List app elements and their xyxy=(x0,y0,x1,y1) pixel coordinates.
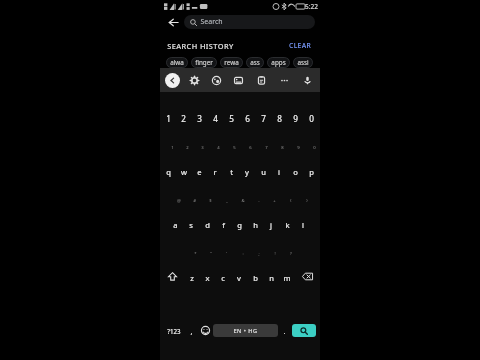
staticText: 1 xyxy=(171,145,174,151)
button[interactable]: 1 xyxy=(161,92,176,144)
button[interactable]: CLEAR xyxy=(287,40,313,51)
staticText: EN • HG xyxy=(233,327,258,335)
staticText: g xyxy=(237,220,242,230)
button[interactable]: Stickers xyxy=(230,72,246,88)
button[interactable]: 5 xyxy=(223,144,239,197)
staticText: assi xyxy=(297,58,309,67)
button[interactable]: 5 xyxy=(223,92,239,144)
button[interactable]: Back xyxy=(165,14,181,30)
button[interactable]: ass xyxy=(246,57,264,68)
staticText: ( xyxy=(290,198,292,204)
button[interactable]: 0 xyxy=(303,144,319,197)
staticText: j xyxy=(270,220,272,230)
button[interactable]: Shift xyxy=(161,250,184,303)
button[interactable]: 0 xyxy=(303,92,319,144)
button[interactable]: ( xyxy=(279,197,295,250)
button[interactable]: & xyxy=(231,197,247,250)
button[interactable]: + xyxy=(263,197,279,250)
button[interactable]: 3 xyxy=(191,144,207,197)
button[interactable]: finger xyxy=(191,57,217,68)
staticText: w xyxy=(181,167,187,177)
button[interactable]: Settings xyxy=(186,72,202,88)
staticText: b xyxy=(253,273,258,283)
button[interactable]: 6 xyxy=(239,144,255,197)
staticText: CLEAR xyxy=(289,41,311,50)
staticText: 3 xyxy=(201,145,204,151)
staticText: 8 xyxy=(281,145,284,151)
button[interactable]: ) xyxy=(295,197,311,250)
staticText: SEARCH HISTORY xyxy=(167,41,234,51)
staticText: x xyxy=(205,273,210,283)
button[interactable]: apps xyxy=(267,57,290,68)
button[interactable]: 2 xyxy=(176,92,191,144)
staticText: h xyxy=(253,220,258,230)
staticText: 2 xyxy=(186,145,189,151)
staticText: e xyxy=(197,167,202,177)
staticText: ) xyxy=(306,198,308,204)
button[interactable]: $ xyxy=(199,197,215,250)
button[interactable]: ' xyxy=(215,250,231,303)
staticText: - xyxy=(258,198,260,204)
button[interactable]: 7 xyxy=(255,144,271,197)
staticText: finger xyxy=(195,58,213,67)
staticText: 0 xyxy=(313,145,316,151)
staticText: 6 xyxy=(245,113,250,124)
staticText: $ xyxy=(209,198,212,204)
button[interactable]: ! xyxy=(263,250,279,303)
staticText: ' xyxy=(226,251,227,257)
staticText: & xyxy=(241,198,245,204)
button[interactable]: 1 xyxy=(161,144,176,197)
staticText: apps xyxy=(271,58,286,67)
staticText: r xyxy=(213,167,217,177)
button[interactable]: Emoji xyxy=(198,305,213,356)
button[interactable]: ? xyxy=(279,250,295,303)
button[interactable]: 8 xyxy=(271,144,287,197)
staticText: u xyxy=(261,167,266,177)
button[interactable]: ?123 xyxy=(163,305,185,356)
button[interactable]: - xyxy=(247,197,263,250)
button[interactable]: 6 xyxy=(239,92,255,144)
button[interactable]: assi xyxy=(293,57,313,68)
button[interactable]: 2 xyxy=(176,144,191,197)
button[interactable]: 9 xyxy=(287,92,303,144)
button[interactable]: * xyxy=(184,250,199,303)
staticText: q xyxy=(166,167,171,177)
button[interactable]: 4 xyxy=(207,92,223,144)
button[interactable]: _ xyxy=(215,197,231,250)
button[interactable]: , xyxy=(185,305,198,356)
button[interactable]: : xyxy=(231,250,247,303)
button[interactable]: . xyxy=(278,305,291,356)
button[interactable]: 7 xyxy=(255,92,271,144)
staticText: 8 xyxy=(277,113,282,124)
button[interactable]: " xyxy=(199,250,215,303)
button[interactable]: 9 xyxy=(287,144,303,197)
button[interactable]: rewa xyxy=(220,57,243,68)
button[interactable]: # xyxy=(183,197,199,250)
button[interactable]: alwa xyxy=(166,57,188,68)
button[interactable]: 4 xyxy=(207,144,223,197)
staticText: n xyxy=(269,273,274,283)
button[interactable]: Search xyxy=(184,15,315,29)
staticText: _ xyxy=(226,198,228,204)
staticText: f xyxy=(222,220,225,230)
button[interactable]: EN • HG xyxy=(213,324,278,337)
staticText: t xyxy=(230,167,233,177)
staticText: v xyxy=(237,273,241,283)
staticText: : xyxy=(242,251,244,257)
button[interactable]: @ xyxy=(168,197,183,250)
staticText: m xyxy=(283,273,291,283)
staticText: 4 xyxy=(213,113,218,124)
button[interactable]: Collapse toolbar xyxy=(165,73,180,88)
button[interactable]: Voice input xyxy=(299,72,315,88)
staticText: k xyxy=(285,220,290,230)
button[interactable]: Themes xyxy=(208,72,224,88)
button[interactable]: Clipboard xyxy=(253,72,269,88)
staticText: i xyxy=(278,167,280,177)
button[interactable]: 3 xyxy=(191,92,207,144)
button[interactable]: More options xyxy=(276,72,292,88)
button[interactable]: 8 xyxy=(271,92,287,144)
staticText: * xyxy=(194,251,197,257)
button[interactable]: ; xyxy=(247,250,263,303)
button[interactable]: Search xyxy=(292,324,316,337)
button[interactable]: Backspace xyxy=(295,250,319,303)
